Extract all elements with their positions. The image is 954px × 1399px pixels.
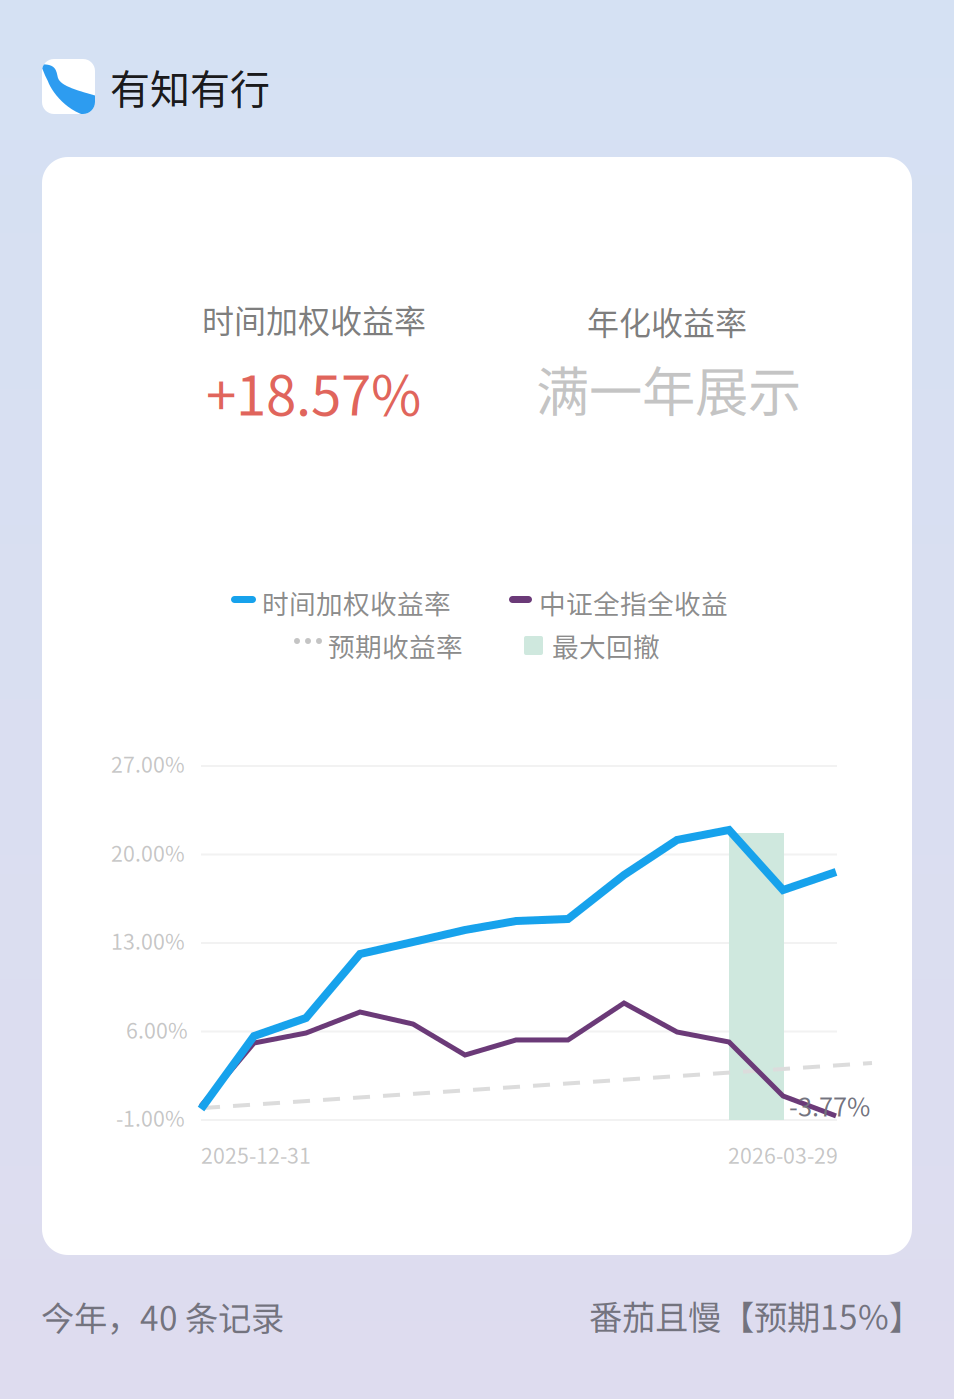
staticText: 时间加权收益率: [202, 296, 426, 342]
staticText: 2025-12-31: [201, 1139, 311, 1170]
button[interactable]: 有知有行: [42, 59, 362, 114]
staticText: 最大回撤: [552, 626, 660, 665]
staticText: 预期收益率: [328, 626, 463, 665]
staticText: 中证全指全收益: [539, 583, 728, 622]
staticText: +18.57%: [206, 352, 421, 431]
staticText: -3.77%: [789, 1087, 870, 1124]
staticText: 20.00%: [111, 837, 185, 868]
staticText: 2026-03-29: [728, 1139, 838, 1170]
staticText: 13.00%: [111, 925, 185, 956]
staticText: 27.00%: [111, 748, 185, 779]
staticText: 年化收益率: [587, 298, 747, 344]
staticText: 时间加权收益率: [262, 583, 451, 622]
staticText: 有知有行: [110, 57, 270, 115]
staticText: 6.00%: [126, 1014, 188, 1045]
staticText: 番茄且慢【预期15%】: [589, 1291, 922, 1339]
staticText: -1.00%: [116, 1102, 185, 1133]
staticText: 今年，40 条记录: [41, 1292, 284, 1340]
staticText: 满一年展示: [536, 350, 801, 427]
